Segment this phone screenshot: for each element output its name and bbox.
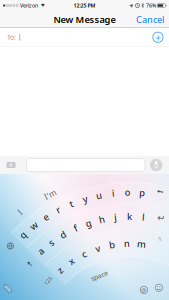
button[interactable]: ?!. bbox=[158, 236, 162, 242]
button[interactable]: At Sign bbox=[140, 286, 147, 294]
staticText: To: bbox=[7, 33, 16, 42]
staticText: m bbox=[137, 238, 146, 250]
button[interactable]: ↵ bbox=[157, 213, 165, 223]
button[interactable]: Camera bbox=[6, 162, 15, 168]
button[interactable]: m bbox=[137, 238, 146, 250]
button[interactable]: ↑ bbox=[26, 259, 33, 269]
staticText: o bbox=[125, 186, 131, 198]
button[interactable]: f bbox=[74, 222, 77, 234]
button[interactable]: j bbox=[114, 211, 117, 223]
button[interactable]: r bbox=[56, 203, 60, 216]
staticText: x bbox=[69, 255, 74, 267]
button[interactable]: z bbox=[58, 264, 62, 276]
button[interactable]: k bbox=[127, 210, 132, 222]
staticText: Cancel bbox=[136, 13, 164, 26]
staticText: a bbox=[38, 245, 43, 257]
button[interactable]: y bbox=[82, 193, 87, 205]
button[interactable]: i bbox=[112, 187, 115, 199]
button[interactable]: Send bbox=[150, 159, 162, 171]
staticText: t bbox=[69, 197, 73, 210]
button[interactable]: p bbox=[139, 186, 145, 199]
staticText: @ bbox=[141, 286, 146, 294]
button[interactable]: w bbox=[30, 219, 38, 232]
button[interactable]: Add Contact bbox=[153, 30, 163, 44]
staticText: ↵ bbox=[157, 213, 165, 223]
button[interactable]: Emoji bbox=[155, 284, 162, 291]
staticText: b bbox=[109, 238, 115, 251]
staticText: s bbox=[49, 236, 54, 248]
staticText: space bbox=[90, 271, 108, 280]
staticText: + bbox=[155, 30, 161, 44]
staticText: v bbox=[95, 242, 100, 254]
staticText: d bbox=[60, 228, 66, 241]
staticText: c bbox=[82, 248, 87, 260]
staticText: z bbox=[58, 264, 62, 276]
staticText: n bbox=[124, 237, 130, 249]
staticText: 123 bbox=[43, 277, 52, 285]
button[interactable]: c bbox=[82, 248, 87, 260]
button[interactable]: space bbox=[90, 271, 108, 280]
button[interactable]: l bbox=[142, 211, 145, 223]
staticText: q bbox=[20, 229, 26, 241]
staticText: p bbox=[139, 186, 145, 199]
button[interactable]: ← bbox=[157, 187, 164, 196]
staticText: w bbox=[30, 219, 38, 232]
staticText: k bbox=[127, 210, 132, 222]
button[interactable]: t bbox=[69, 197, 73, 210]
staticText: 12:25 PM bbox=[73, 2, 95, 9]
staticText: y bbox=[82, 193, 87, 205]
button[interactable]: Cancel bbox=[136, 13, 164, 26]
button[interactable]: o bbox=[125, 186, 131, 198]
staticText: e bbox=[43, 211, 48, 223]
staticText: r bbox=[56, 203, 60, 216]
staticText: g bbox=[85, 217, 91, 229]
button[interactable]: I bbox=[18, 207, 21, 217]
staticText: New Message bbox=[53, 13, 115, 26]
staticText: f bbox=[74, 222, 77, 234]
button[interactable]: I'm bbox=[44, 189, 56, 200]
staticText: ↑ bbox=[26, 259, 33, 269]
button[interactable]: v bbox=[95, 242, 100, 254]
button[interactable]: x bbox=[69, 255, 74, 267]
staticText: ?!. bbox=[158, 236, 162, 242]
button[interactable]: s bbox=[49, 236, 54, 248]
staticText: h bbox=[99, 213, 105, 225]
button[interactable]: b bbox=[109, 238, 115, 251]
button[interactable]: Next Keyboard bbox=[7, 243, 13, 249]
staticText: Verizon bbox=[20, 2, 38, 9]
button[interactable]: e bbox=[43, 211, 48, 223]
button[interactable]: a bbox=[38, 245, 43, 257]
button[interactable]: g bbox=[85, 217, 91, 229]
staticText: ← bbox=[157, 187, 164, 196]
staticText: j bbox=[114, 211, 117, 223]
staticText: u bbox=[96, 189, 102, 201]
button[interactable]: 123 bbox=[43, 277, 52, 285]
button[interactable]: d bbox=[60, 228, 66, 241]
staticText: 76% bbox=[146, 2, 156, 9]
button[interactable]: h bbox=[99, 213, 105, 225]
button[interactable]: n bbox=[124, 237, 130, 249]
staticText: I'm bbox=[44, 189, 56, 200]
staticText: I bbox=[18, 207, 21, 217]
staticText: l bbox=[142, 211, 145, 223]
button[interactable]: Keyboard Mode bbox=[1, 280, 15, 294]
staticText: i bbox=[112, 187, 115, 199]
button[interactable]: q bbox=[20, 229, 26, 241]
button[interactable]: u bbox=[96, 189, 102, 201]
